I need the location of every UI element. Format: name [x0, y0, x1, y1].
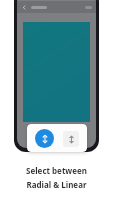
staticText: Select between	[26, 165, 87, 176]
staticText: Radial & Linear	[26, 179, 87, 190]
button[interactable]: Radial gradient	[35, 129, 54, 148]
button[interactable]: Linear gradient	[63, 131, 79, 147]
button[interactable]: Back	[21, 4, 28, 11]
button[interactable]: More options	[85, 6, 92, 9]
